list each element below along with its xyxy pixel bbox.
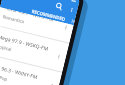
button[interactable]: Amor 93.1 - WPAT-FM — [0, 7, 74, 43]
staticText: Latin Pop — [0, 71, 9, 82]
button[interactable]: Station options — [54, 52, 64, 61]
staticText: Romantica — [2, 13, 25, 24]
button[interactable]: More options — [68, 6, 76, 14]
button[interactable]: Mega 97.9 - WSKQ-FM — [0, 26, 69, 72]
button[interactable]: Station options — [47, 81, 57, 85]
staticText: Mega 97.9 - WSKQ-FM — [0, 34, 49, 53]
staticText: Amor 93.1 - WPAT-FM — [4, 8, 53, 23]
staticText: NEARBY — [71, 18, 75, 24]
staticText: RECOMMENDED — [31, 8, 67, 22]
staticText: La X 96.3 - WXNY-FM — [0, 63, 39, 81]
button[interactable]: NEARBY — [66, 15, 76, 25]
button[interactable]: RECOMMENDED — [30, 6, 68, 23]
button[interactable]: Hot 97 - WQHT — [0, 84, 55, 85]
button[interactable]: Station options — [61, 23, 71, 32]
button[interactable]: Search — [54, 1, 65, 12]
staticText: Tropical — [0, 42, 13, 52]
button[interactable]: La X 96.3 - WXNY-FM — [0, 55, 62, 85]
